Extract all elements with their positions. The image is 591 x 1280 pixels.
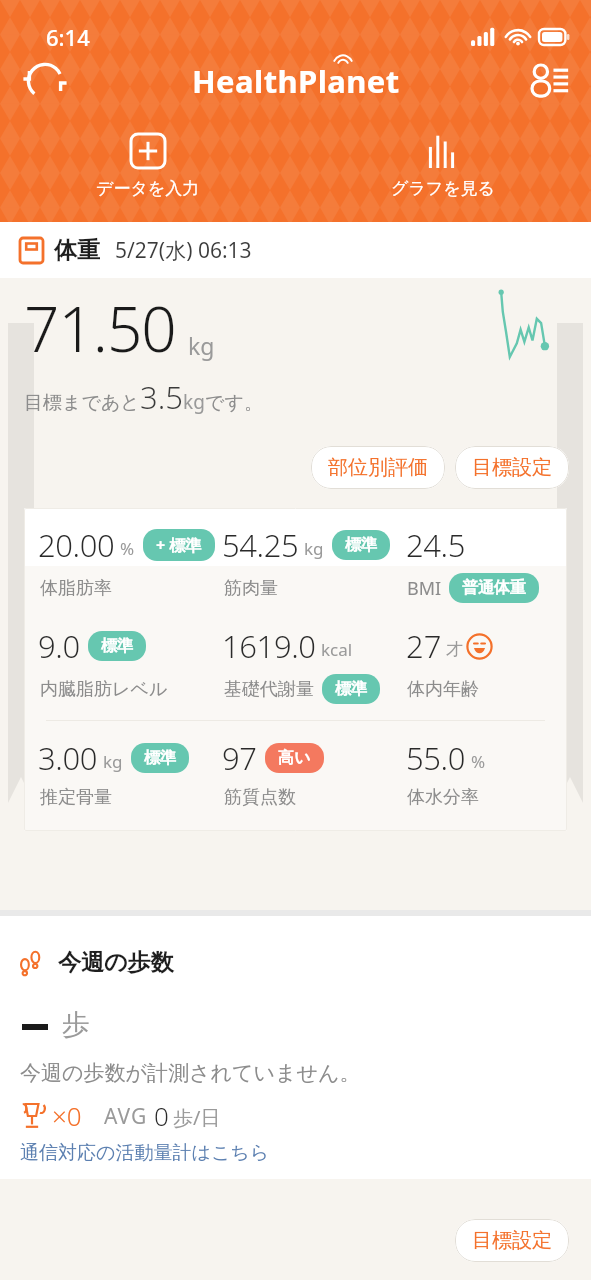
- staticText: 普通体重: [462, 578, 526, 598]
- staticText: 9.0: [38, 625, 80, 667]
- staticText: 97: [222, 737, 257, 779]
- staticText: 筋肉量: [224, 577, 278, 600]
- staticText: 55.0: [406, 737, 466, 779]
- staticText: %: [471, 750, 486, 773]
- button[interactable]: グラフを見る: [295, 130, 591, 203]
- staticText: ×0: [52, 1098, 82, 1133]
- staticText: です。: [205, 391, 263, 415]
- staticText: 1619.0: [222, 625, 316, 667]
- staticText: 標準: [345, 535, 377, 555]
- staticText: BMI: [407, 576, 442, 601]
- staticText: 5/27(水) 06:13: [115, 236, 252, 265]
- staticText: 目標設定: [472, 1228, 552, 1253]
- staticText: 54.25: [222, 524, 299, 566]
- staticText: 71.50: [24, 286, 176, 370]
- staticText: 部位別評価: [328, 455, 428, 480]
- staticText: 高い: [278, 748, 311, 768]
- staticText: 体水分率: [407, 786, 479, 809]
- staticText: グラフを見る: [391, 178, 495, 199]
- button[interactable]: Account: [519, 52, 577, 110]
- staticText: 推定骨量: [40, 786, 112, 809]
- staticText: 歩/日: [173, 1104, 221, 1131]
- staticText: 目標まであと: [24, 391, 140, 415]
- staticText: kg: [103, 750, 123, 773]
- staticText: + 標準: [156, 534, 202, 556]
- staticText: 目標設定: [472, 455, 552, 480]
- staticText: HealthPlanet: [192, 60, 400, 102]
- staticText: 今週の歩数が計測されていません。: [20, 1060, 361, 1086]
- button[interactable]: 目標設定: [455, 1219, 569, 1262]
- staticText: 筋質点数: [224, 786, 296, 809]
- staticText: 標準: [144, 748, 176, 768]
- staticText: 標準: [335, 679, 367, 699]
- staticText: 才: [446, 639, 463, 660]
- staticText: 6:14: [46, 22, 90, 52]
- button[interactable]: 部位別評価: [311, 446, 445, 489]
- staticText: 27: [406, 625, 442, 667]
- staticText: %: [120, 537, 135, 560]
- staticText: kg: [304, 537, 324, 560]
- button[interactable]: Sync: [16, 52, 74, 110]
- button[interactable]: 目標設定: [455, 446, 569, 489]
- staticText: kcal: [321, 638, 353, 661]
- staticText: 体重: [54, 236, 100, 265]
- button[interactable]: データを入力: [0, 130, 295, 203]
- staticText: 今週の歩数: [58, 948, 174, 977]
- staticText: 0: [154, 1098, 169, 1133]
- staticText: 内臓脂肪レベル: [40, 678, 168, 701]
- staticText: 体脂肪率: [40, 577, 112, 600]
- staticText: 24.5: [406, 524, 466, 566]
- staticText: 基礎代謝量: [224, 678, 314, 701]
- staticText: AVG: [104, 1102, 148, 1131]
- button[interactable]: 通信対応の活動量計はこちら: [20, 1141, 270, 1165]
- staticText: 通信対応の活動量計はこちら: [20, 1141, 270, 1165]
- staticText: 3.00: [38, 737, 98, 779]
- staticText: 20.00: [38, 524, 115, 566]
- staticText: データを入力: [96, 178, 200, 199]
- staticText: 標準: [101, 636, 133, 656]
- staticText: kg: [183, 389, 205, 415]
- staticText: 3.5: [140, 376, 183, 418]
- staticText: 歩: [62, 1007, 90, 1042]
- staticText: kg: [188, 330, 215, 361]
- staticText: 体内年齢: [407, 678, 479, 701]
